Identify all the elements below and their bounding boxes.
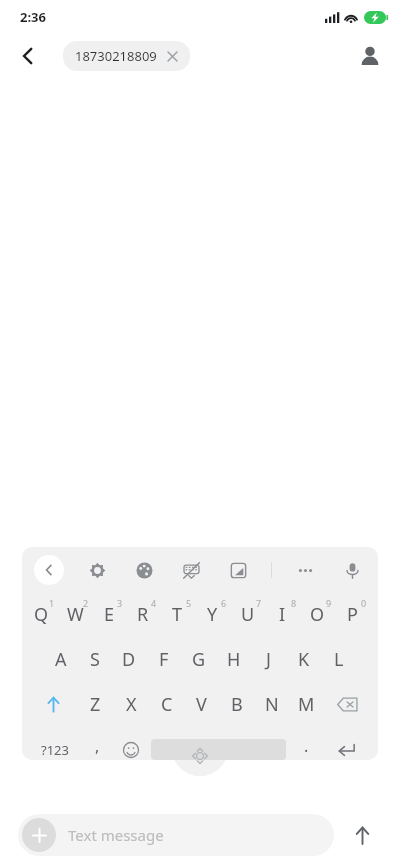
button[interactable]: Emoji bbox=[114, 727, 148, 772]
button[interactable]: Collapse toolbar bbox=[34, 555, 64, 585]
staticText: 5 bbox=[186, 597, 192, 609]
button[interactable]: ?123 bbox=[30, 727, 80, 772]
staticText: I bbox=[279, 602, 286, 627]
button[interactable]: H bbox=[216, 637, 251, 682]
button[interactable]: R bbox=[129, 592, 163, 637]
button[interactable]: I bbox=[268, 592, 303, 637]
button[interactable]: . bbox=[289, 727, 323, 772]
staticText: L bbox=[334, 647, 344, 672]
button[interactable]: G bbox=[181, 637, 216, 682]
button[interactable]: Z bbox=[77, 682, 113, 727]
button[interactable]: O bbox=[303, 592, 338, 637]
button[interactable]: , bbox=[80, 727, 114, 772]
button[interactable]: M bbox=[289, 682, 324, 727]
button[interactable]: Enter bbox=[323, 727, 370, 772]
staticText: N bbox=[265, 692, 279, 717]
staticText: X bbox=[126, 692, 137, 717]
staticText: 0 bbox=[361, 597, 367, 609]
staticText: Text message bbox=[68, 825, 164, 845]
staticText: F bbox=[159, 647, 169, 672]
button[interactable]: N bbox=[254, 682, 289, 727]
staticText: 2 bbox=[83, 597, 89, 609]
staticText: J bbox=[266, 647, 271, 672]
button[interactable]: Send bbox=[342, 815, 382, 855]
button[interactable]: B bbox=[219, 682, 254, 727]
button[interactable]: Contact bbox=[350, 36, 390, 76]
button[interactable]: T bbox=[163, 592, 198, 637]
button[interactable]: Hide keyboard bbox=[177, 556, 205, 584]
staticText: 4 bbox=[151, 597, 157, 609]
button[interactable]: Shift bbox=[30, 682, 77, 727]
staticText: W bbox=[67, 602, 84, 627]
button[interactable]: Space bbox=[151, 739, 286, 760]
staticText: D bbox=[122, 647, 136, 672]
button[interactable]: More options bbox=[291, 556, 319, 584]
staticText: 18730218809 bbox=[75, 47, 157, 65]
staticText: S bbox=[90, 647, 100, 672]
staticText: Z bbox=[90, 692, 101, 717]
staticText: 7 bbox=[256, 597, 262, 609]
button[interactable]: L bbox=[321, 637, 356, 682]
staticText: Q bbox=[34, 602, 49, 627]
staticText: 3 bbox=[117, 597, 123, 609]
staticText: 8 bbox=[291, 597, 297, 609]
button[interactable]: E bbox=[95, 592, 129, 637]
button[interactable]: C bbox=[149, 682, 184, 727]
staticText: Y bbox=[207, 602, 218, 627]
button[interactable]: U bbox=[233, 592, 268, 637]
button[interactable]: Backspace bbox=[324, 682, 370, 727]
button[interactable]: S bbox=[78, 637, 112, 682]
staticText: 1 bbox=[49, 597, 55, 609]
button[interactable]: Floating keyboard bbox=[224, 556, 252, 584]
button[interactable]: X bbox=[113, 682, 149, 727]
button[interactable]: Q bbox=[27, 592, 61, 637]
staticText: E bbox=[104, 602, 115, 627]
button[interactable]: D bbox=[112, 637, 146, 682]
staticText: U bbox=[241, 602, 255, 627]
staticText: G bbox=[192, 647, 206, 672]
button[interactable]: Themes bbox=[130, 556, 158, 584]
staticText: O bbox=[310, 602, 325, 627]
button[interactable]: Settings bbox=[83, 556, 111, 584]
button[interactable]: V bbox=[184, 682, 219, 727]
button[interactable]: Voice input bbox=[338, 556, 366, 584]
other: Cursor control bbox=[189, 745, 211, 767]
staticText: B bbox=[231, 692, 243, 717]
button[interactable]: W bbox=[61, 592, 95, 637]
staticText: T bbox=[172, 602, 183, 627]
button[interactable]: Back bbox=[8, 36, 48, 76]
button[interactable]: Y bbox=[198, 592, 233, 637]
button[interactable]: A bbox=[44, 637, 78, 682]
button[interactable]: Attach bbox=[22, 818, 56, 852]
staticText: ?123 bbox=[41, 741, 69, 759]
staticText: A bbox=[55, 647, 67, 672]
staticText: 6 bbox=[221, 597, 227, 609]
button[interactable]: P bbox=[338, 592, 373, 637]
staticText: 9 bbox=[326, 597, 332, 609]
staticText: 2:36 bbox=[20, 8, 46, 26]
button[interactable]: 18730218809 bbox=[63, 41, 190, 71]
staticText: V bbox=[196, 692, 207, 717]
staticText: K bbox=[298, 647, 310, 672]
button[interactable]: K bbox=[286, 637, 321, 682]
staticText: . bbox=[304, 735, 309, 757]
staticText: , bbox=[95, 735, 100, 757]
button[interactable]: J bbox=[251, 637, 286, 682]
button[interactable]: F bbox=[146, 637, 181, 682]
staticText: H bbox=[227, 647, 241, 672]
staticText: R bbox=[137, 602, 149, 627]
staticText: P bbox=[347, 602, 358, 627]
staticText: C bbox=[161, 692, 173, 717]
button[interactable]: Attach bbox=[18, 814, 334, 856]
staticText: M bbox=[298, 692, 315, 717]
